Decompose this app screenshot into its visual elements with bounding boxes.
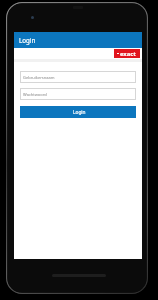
button[interactable]: Wachtwoord	[20, 88, 136, 100]
staticText: exact	[120, 50, 136, 58]
staticText: Wachtwoord	[23, 92, 47, 97]
button[interactable]: Exact logo	[114, 49, 140, 58]
button[interactable]: Gebruikersnaam	[20, 71, 136, 83]
staticText: Login	[73, 109, 86, 116]
button[interactable]: Login	[14, 32, 142, 48]
button[interactable]: Login	[20, 106, 136, 118]
staticText: Login	[19, 36, 36, 44]
staticText: Gebruikersnaam	[23, 75, 55, 80]
